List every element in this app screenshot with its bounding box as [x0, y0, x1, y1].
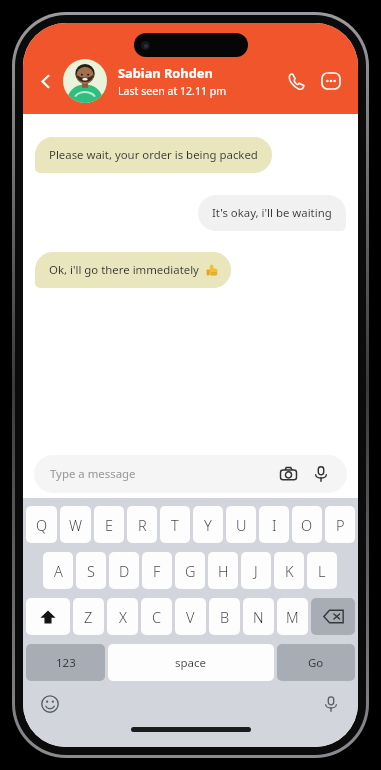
button[interactable]: T [160, 506, 190, 543]
button[interactable]: A [43, 552, 73, 589]
staticText: L [318, 561, 326, 581]
staticText: O [301, 515, 313, 535]
staticText: M [286, 607, 299, 627]
button[interactable]: space [108, 644, 274, 681]
staticText: P [336, 515, 345, 535]
staticText: G [185, 561, 196, 581]
button[interactable]: Backspace [311, 598, 355, 635]
button[interactable]: Camera [275, 461, 301, 487]
button[interactable]: F [142, 552, 172, 589]
staticText: It's okay, i'll be waiting [212, 205, 332, 221]
button[interactable]: N [243, 598, 274, 635]
button[interactable]: Go [277, 644, 355, 681]
button[interactable]: B [209, 598, 240, 635]
staticText: J [254, 561, 258, 581]
button[interactable]: It's okay, i'll be waiting [198, 195, 346, 231]
staticText: Please wait, your order is being packed [49, 147, 258, 163]
staticText: R [138, 515, 147, 535]
staticText: B [220, 607, 230, 627]
button[interactable]: Back [29, 65, 61, 97]
staticText: K [285, 561, 294, 581]
staticText: I [272, 515, 277, 535]
staticText: V [186, 607, 195, 627]
staticText: F [153, 561, 161, 581]
button[interactable]: E [94, 506, 124, 543]
button[interactable]: Y [193, 506, 223, 543]
button[interactable]: Please wait, your order is being packed [35, 137, 272, 173]
button[interactable]: G [175, 552, 205, 589]
button[interactable]: I [259, 506, 289, 543]
staticText: E [105, 515, 114, 535]
staticText: Z [84, 607, 93, 627]
button[interactable]: U [226, 506, 256, 543]
button[interactable]: H [208, 552, 238, 589]
staticText: Sabian Rohden [118, 64, 213, 81]
staticText: Go [308, 655, 324, 671]
button[interactable]: O [292, 506, 322, 543]
staticText: Q [36, 515, 48, 535]
button[interactable]: Ok, i'll go there immediately [35, 252, 231, 288]
staticText: space [175, 655, 207, 671]
staticText: W [69, 515, 83, 535]
button[interactable]: P [325, 506, 355, 543]
button[interactable]: Shift [26, 598, 70, 635]
button[interactable]: L [307, 552, 337, 589]
staticText: D [119, 561, 130, 581]
button[interactable]: Q [26, 506, 57, 543]
button[interactable]: V [175, 598, 206, 635]
button[interactable]: S [76, 552, 106, 589]
staticText: Ok, i'll go there immediately [49, 262, 199, 278]
button[interactable]: X [107, 598, 138, 635]
button[interactable]: More options [316, 66, 346, 96]
staticText: X [119, 607, 127, 627]
button[interactable]: W [60, 506, 91, 543]
button[interactable]: R [127, 506, 157, 543]
button[interactable]: Call [281, 66, 311, 96]
button[interactable]: 123 [26, 644, 105, 681]
staticText: Type a message [50, 466, 136, 482]
button[interactable]: Voice message [308, 461, 334, 487]
button[interactable]: D [109, 552, 139, 589]
button[interactable]: Z [73, 598, 104, 635]
button[interactable]: M [277, 598, 308, 635]
staticText: Y [204, 515, 212, 535]
button[interactable]: Emoji [37, 691, 63, 717]
staticText: A [54, 561, 63, 581]
staticText: N [253, 607, 264, 627]
staticText: U [236, 515, 247, 535]
button[interactable]: Type a message [34, 455, 347, 493]
button[interactable]: J [241, 552, 271, 589]
button[interactable]: K [274, 552, 304, 589]
staticText: Last seen at 12.11 pm [118, 84, 227, 98]
button[interactable]: Dictate [318, 691, 344, 717]
staticText: 123 [56, 655, 76, 671]
staticText: C [152, 607, 162, 627]
staticText: T [171, 515, 179, 535]
staticText: H [218, 561, 229, 581]
button[interactable]: C [141, 598, 172, 635]
staticText: S [87, 561, 95, 581]
